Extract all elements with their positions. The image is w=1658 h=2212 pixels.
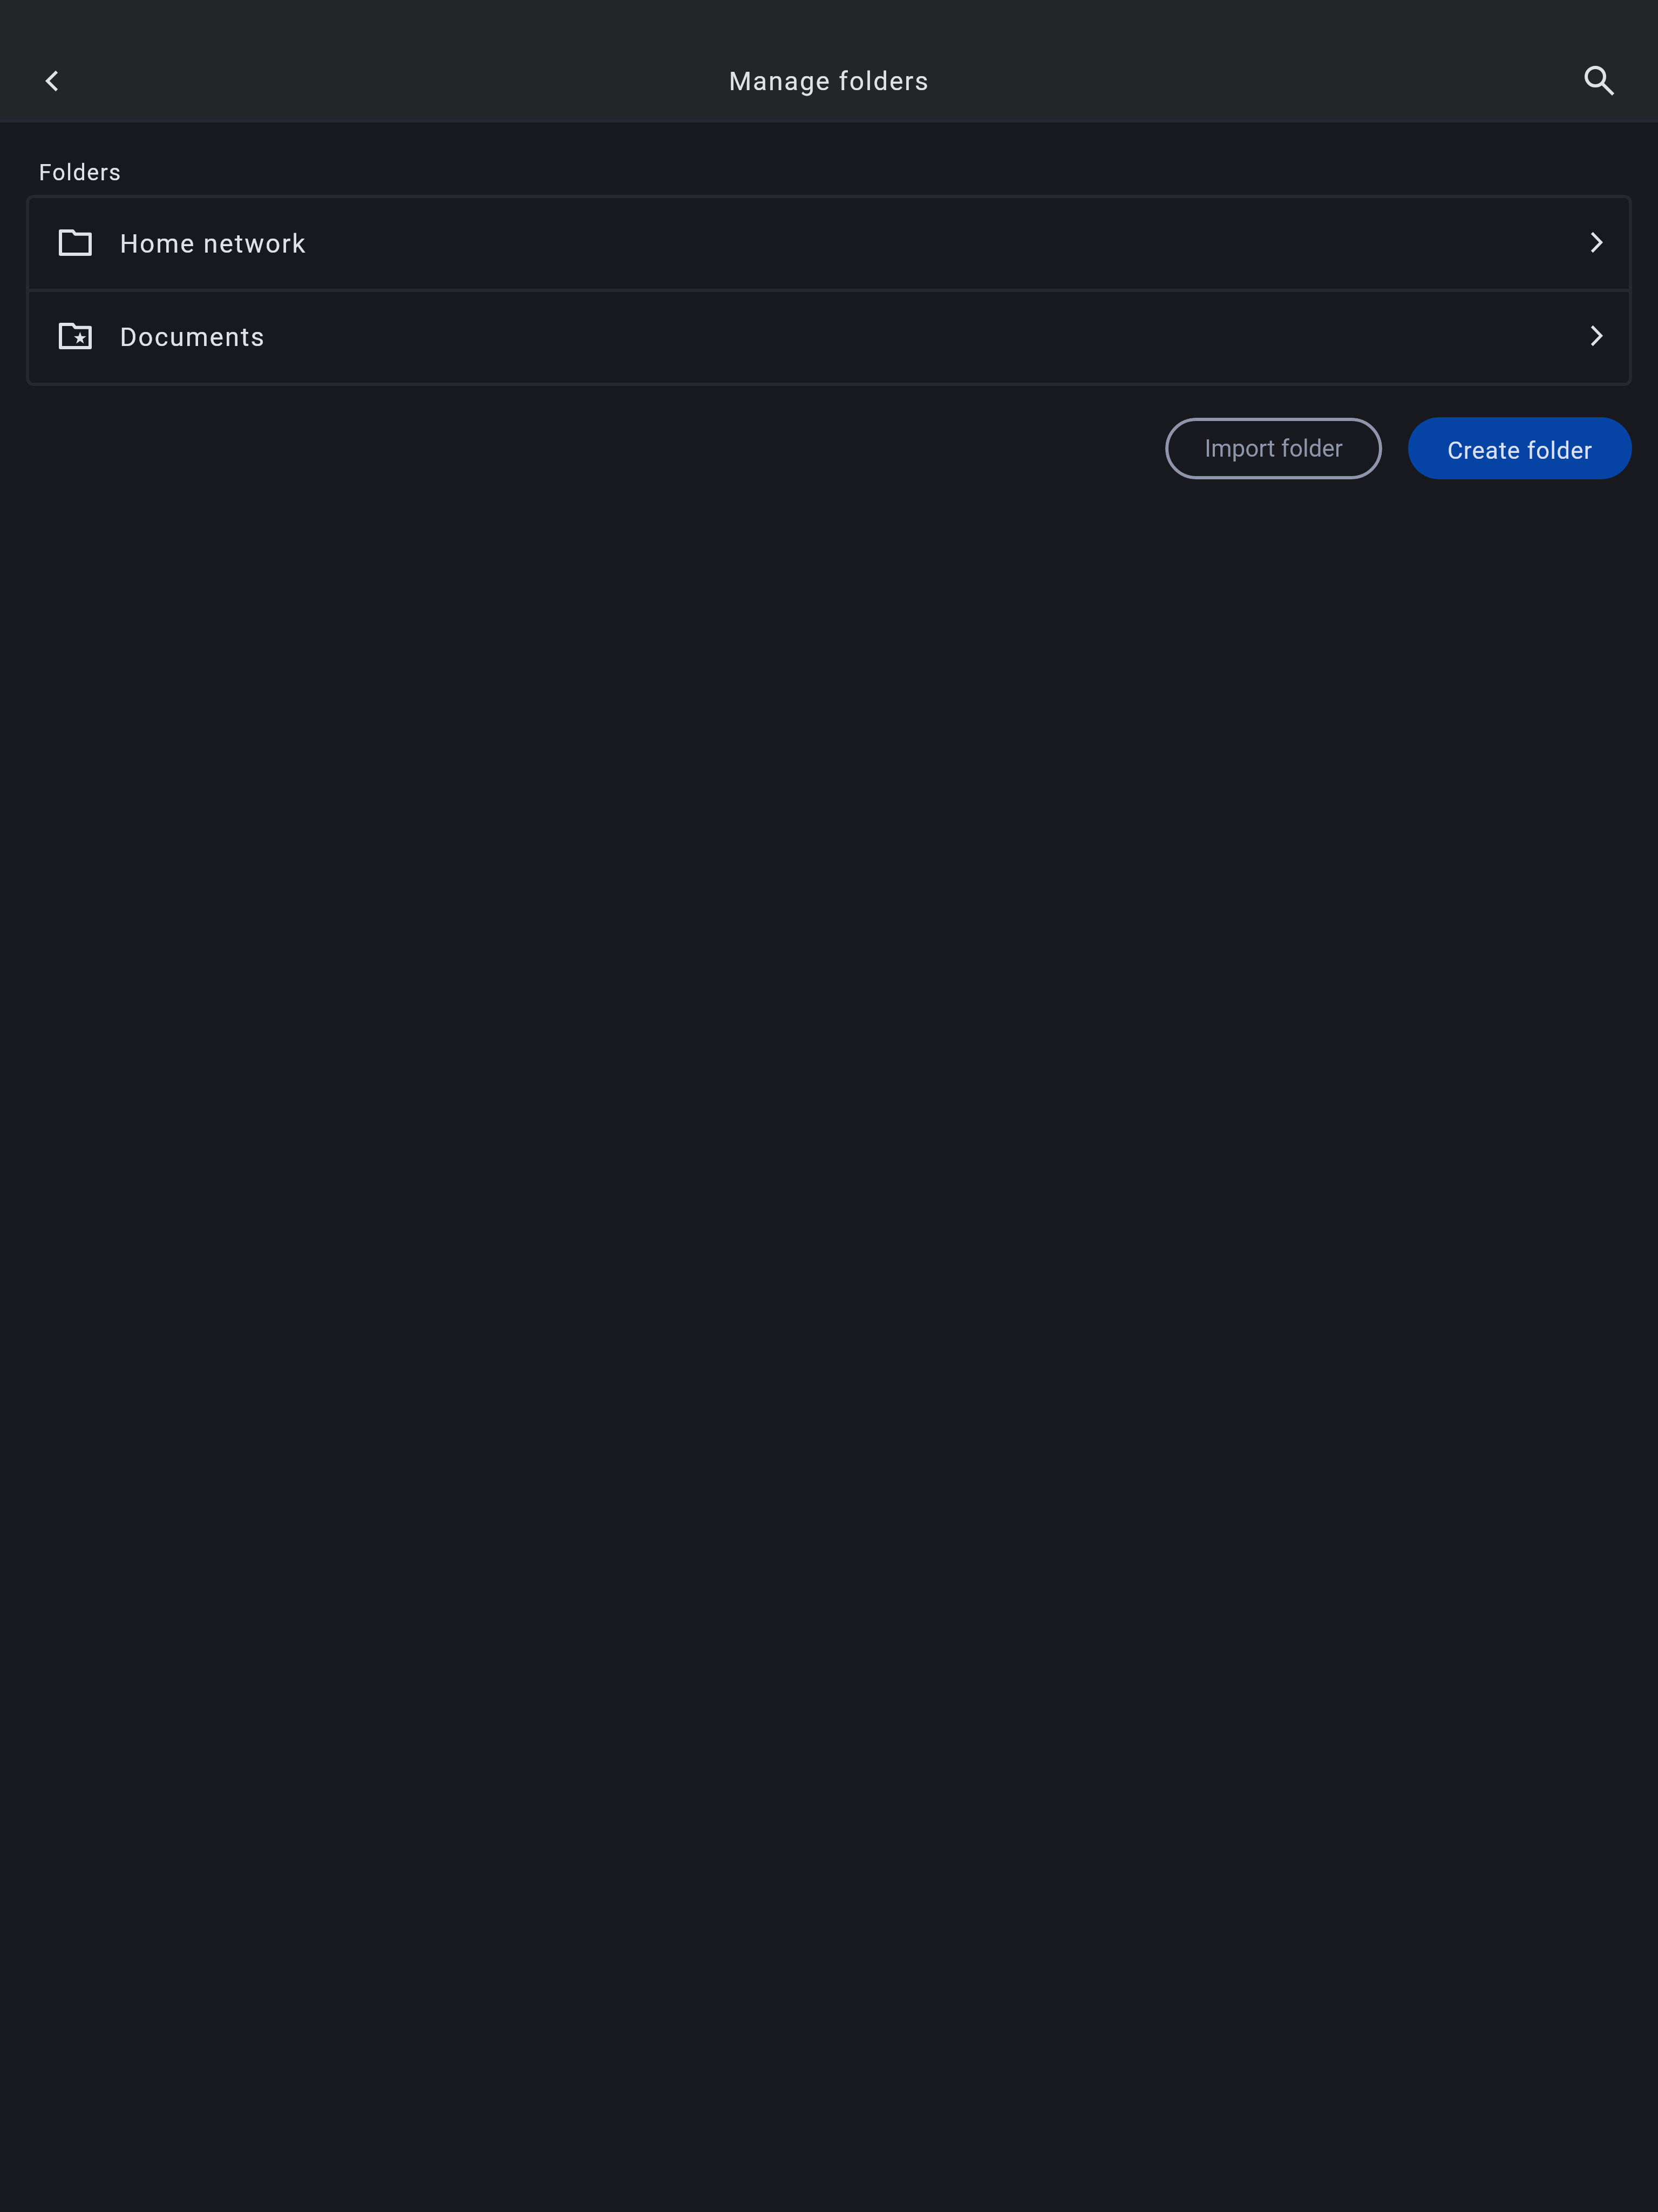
button[interactable]: Documents: [26, 292, 1632, 386]
staticText: Folders: [39, 159, 122, 186]
staticText: Manage folders: [729, 66, 930, 96]
button[interactable]: Search: [1565, 46, 1635, 116]
button[interactable]: Home network: [26, 195, 1632, 289]
button[interactable]: Back: [17, 46, 87, 116]
staticText: Create folder: [1448, 437, 1593, 465]
staticText: Import folder: [1205, 435, 1343, 463]
staticText: Home network: [120, 228, 307, 259]
staticText: Documents: [120, 322, 266, 352]
button[interactable]: Import folder: [1165, 418, 1382, 479]
button[interactable]: Create folder: [1408, 417, 1632, 479]
